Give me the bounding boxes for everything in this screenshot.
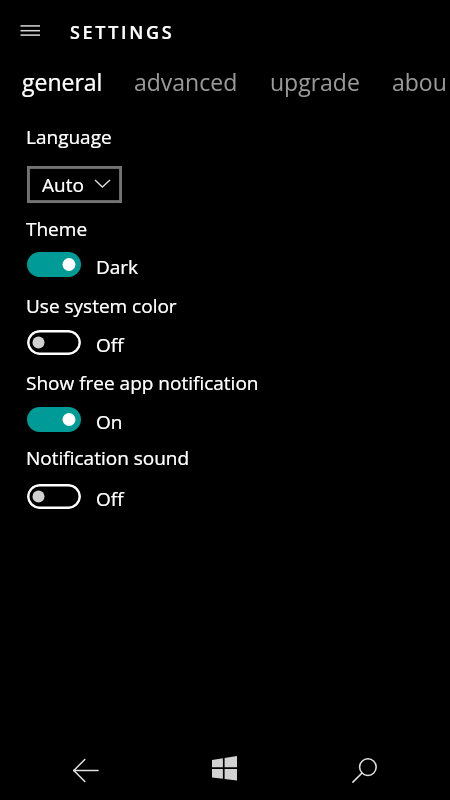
staticText: Auto [42, 172, 84, 198]
button[interactable]: On [27, 407, 81, 432]
staticText: about [392, 66, 446, 97]
button[interactable]: Menu [10, 12, 50, 50]
button[interactable]: Off [27, 484, 81, 509]
staticText: Language [26, 124, 112, 150]
button[interactable]: Dark [27, 252, 81, 277]
staticText: Dark [96, 254, 139, 280]
button[interactable]: Search [314, 739, 414, 800]
staticText: Use system color [26, 293, 177, 319]
staticText: Notification sound [26, 445, 190, 471]
staticText: Off [96, 332, 124, 358]
button[interactable]: upgrade [270, 66, 360, 97]
button[interactable]: Auto [27, 166, 122, 203]
button[interactable]: about [392, 66, 446, 100]
staticText: Off [96, 486, 124, 512]
button[interactable]: general [22, 66, 103, 97]
staticText: On [96, 409, 123, 435]
staticText: SETTINGS [70, 20, 175, 45]
staticText: Show free app notification [26, 370, 259, 396]
button[interactable]: Home [174, 737, 274, 799]
button[interactable]: Off [27, 330, 81, 355]
button[interactable]: Back [35, 739, 135, 800]
staticText: Theme [26, 216, 88, 242]
button[interactable]: advanced [134, 66, 238, 97]
